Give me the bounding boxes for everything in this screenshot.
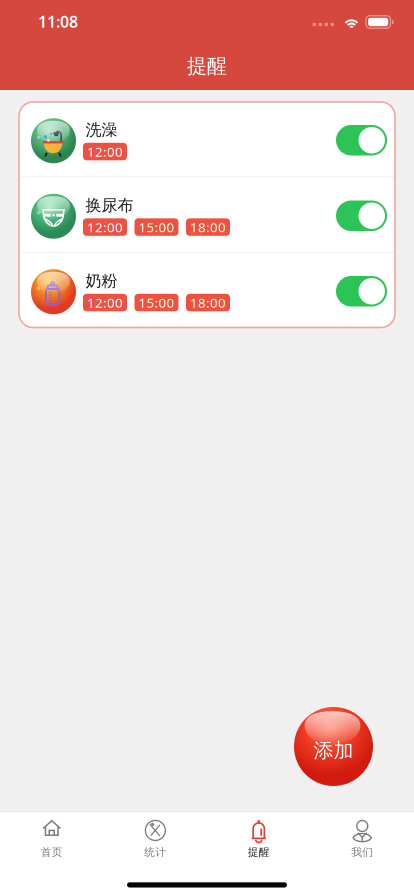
staticText: 添加 [313, 738, 353, 763]
staticText: 首页 [41, 846, 63, 859]
staticText: 15:00 [138, 218, 174, 236]
button[interactable]: 添加 [294, 707, 373, 786]
staticText: 我们 [351, 846, 373, 859]
staticText: 18:00 [190, 218, 226, 236]
staticText: 15:00 [138, 294, 174, 311]
button[interactable]: 我们 [310, 819, 414, 866]
button[interactable]: 提醒 [207, 819, 310, 866]
staticText: 统计 [144, 846, 166, 859]
staticText: 12:00 [87, 294, 123, 311]
button[interactable]: 洗澡 [19, 102, 395, 176]
staticText: 奶粉 [85, 271, 117, 291]
button[interactable]: 统计 [103, 819, 207, 866]
button[interactable]: 换尿布 [19, 177, 395, 252]
staticText: 洗澡 [85, 120, 117, 140]
staticText: 18:00 [190, 294, 226, 311]
button[interactable]: 奶粉 [19, 253, 395, 327]
staticText: 提醒 [187, 54, 227, 78]
staticText: 12:00 [87, 218, 123, 236]
staticText: 换尿布 [85, 196, 133, 215]
staticText: 提醒 [248, 846, 270, 859]
button[interactable]: 首页 [0, 819, 103, 866]
staticText: 12:00 [87, 143, 123, 160]
staticText: 11:08 [38, 11, 78, 32]
